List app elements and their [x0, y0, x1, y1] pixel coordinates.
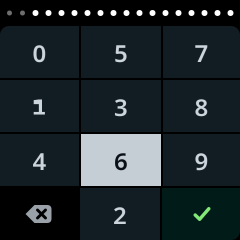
- staticText: 6: [114, 145, 128, 177]
- button[interactable]: Confirm: [162, 188, 240, 240]
- button[interactable]: 2: [80, 188, 160, 240]
- button[interactable]: 5: [81, 26, 161, 78]
- button[interactable]: 3: [81, 80, 161, 132]
- staticText: 4: [32, 145, 46, 177]
- staticText: 0: [32, 37, 46, 69]
- button[interactable]: 4: [0, 134, 79, 186]
- staticText: 2: [113, 199, 127, 231]
- button[interactable]: 7: [163, 26, 240, 78]
- button[interactable]: 0: [0, 26, 79, 78]
- button[interactable]: 6: [81, 134, 161, 186]
- button[interactable]: Delete: [0, 188, 78, 240]
- staticText: 7: [194, 37, 208, 69]
- staticText: 3: [114, 91, 128, 123]
- button[interactable]: 8: [163, 80, 240, 132]
- staticText: 5: [114, 37, 128, 69]
- button[interactable]: [0, 80, 79, 132]
- button[interactable]: 9: [163, 134, 240, 186]
- staticText: 8: [194, 91, 208, 123]
- staticText: 9: [194, 145, 208, 177]
